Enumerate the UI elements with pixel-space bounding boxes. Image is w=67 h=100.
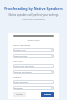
- staticText: Write with confidence: [22, 18, 45, 21]
- staticText: Upload document: [14, 71, 51, 74]
- staticText: Deadline: [14, 87, 51, 90]
- staticText: Select service: [14, 55, 51, 58]
- button[interactable]: Upload document: [13, 70, 54, 74]
- staticText: Submit: [44, 93, 51, 96]
- button[interactable]: Header: [13, 35, 54, 37]
- staticText: English (US): [14, 49, 51, 52]
- button[interactable]: Paste your text here: [13, 64, 54, 68]
- staticText: Native speakers will perfect your writin…: [8, 13, 59, 17]
- button[interactable]: Select service: [13, 54, 54, 58]
- button[interactable]: English (US): [13, 48, 54, 52]
- staticText: Your text: [13, 60, 23, 63]
- button[interactable]: Cancel: [13, 92, 26, 97]
- staticText: Proofreading by Native Speakers: [4, 6, 63, 11]
- staticText: Paste your text here: [14, 65, 53, 68]
- staticText: Contact: [13, 76, 22, 79]
- staticText: Cancel: [16, 93, 23, 96]
- staticText: Order form: [8, 39, 59, 42]
- button[interactable]: Email address: [13, 80, 54, 84]
- button[interactable]: Submit: [41, 92, 54, 97]
- button[interactable]: Deadline: [13, 86, 54, 90]
- staticText: Email address: [14, 81, 53, 84]
- staticText: Select language: [13, 44, 31, 47]
